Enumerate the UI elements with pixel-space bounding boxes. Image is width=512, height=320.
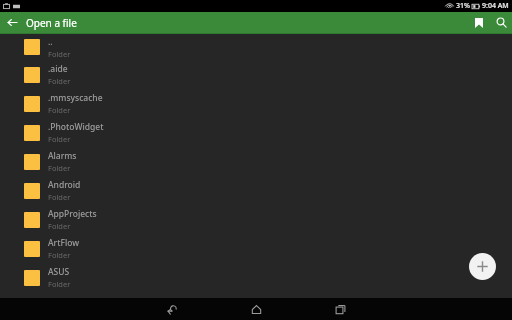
- button[interactable]: .aide: [0, 60, 512, 89]
- button[interactable]: Home: [230, 298, 282, 320]
- button[interactable]: ..: [0, 34, 512, 60]
- staticText: Folder: [48, 49, 71, 59]
- staticText: 31%: [456, 1, 470, 11]
- staticText: .aide: [48, 63, 68, 75]
- staticText: Folder: [48, 192, 71, 202]
- button[interactable]: AppProjects: [0, 205, 512, 234]
- staticText: Folder: [48, 221, 71, 231]
- button[interactable]: Recent apps: [314, 298, 366, 320]
- button[interactable]: ArtFlow: [0, 234, 512, 263]
- staticText: Folder: [48, 76, 71, 86]
- button[interactable]: ASUS: [0, 263, 512, 292]
- staticText: Folder: [48, 163, 71, 173]
- button[interactable]: Search: [490, 12, 512, 33]
- staticText: Folder: [48, 105, 71, 115]
- staticText: 9:04 AM: [482, 1, 509, 11]
- button[interactable]: Back: [146, 298, 198, 320]
- button[interactable]: .PhotoWidget: [0, 118, 512, 147]
- staticText: .mmsyscache: [48, 92, 103, 104]
- staticText: Alarms: [48, 150, 77, 162]
- button[interactable]: Bookmarks: [468, 12, 490, 33]
- staticText: .PhotoWidget: [48, 121, 104, 133]
- button[interactable]: Back: [0, 12, 24, 33]
- button[interactable]: Alarms: [0, 147, 512, 176]
- staticText: Open a file: [26, 16, 77, 30]
- button[interactable]: Add: [469, 253, 496, 280]
- staticText: Folder: [48, 250, 71, 260]
- staticText: ..: [48, 36, 53, 48]
- staticText: Folder: [48, 134, 71, 144]
- staticText: Android: [48, 179, 81, 191]
- staticText: Folder: [48, 279, 71, 289]
- staticText: ASUS: [48, 266, 70, 278]
- staticText: AppProjects: [48, 208, 97, 220]
- staticText: ArtFlow: [48, 237, 80, 249]
- button[interactable]: Android: [0, 176, 512, 205]
- button[interactable]: .mmsyscache: [0, 89, 512, 118]
